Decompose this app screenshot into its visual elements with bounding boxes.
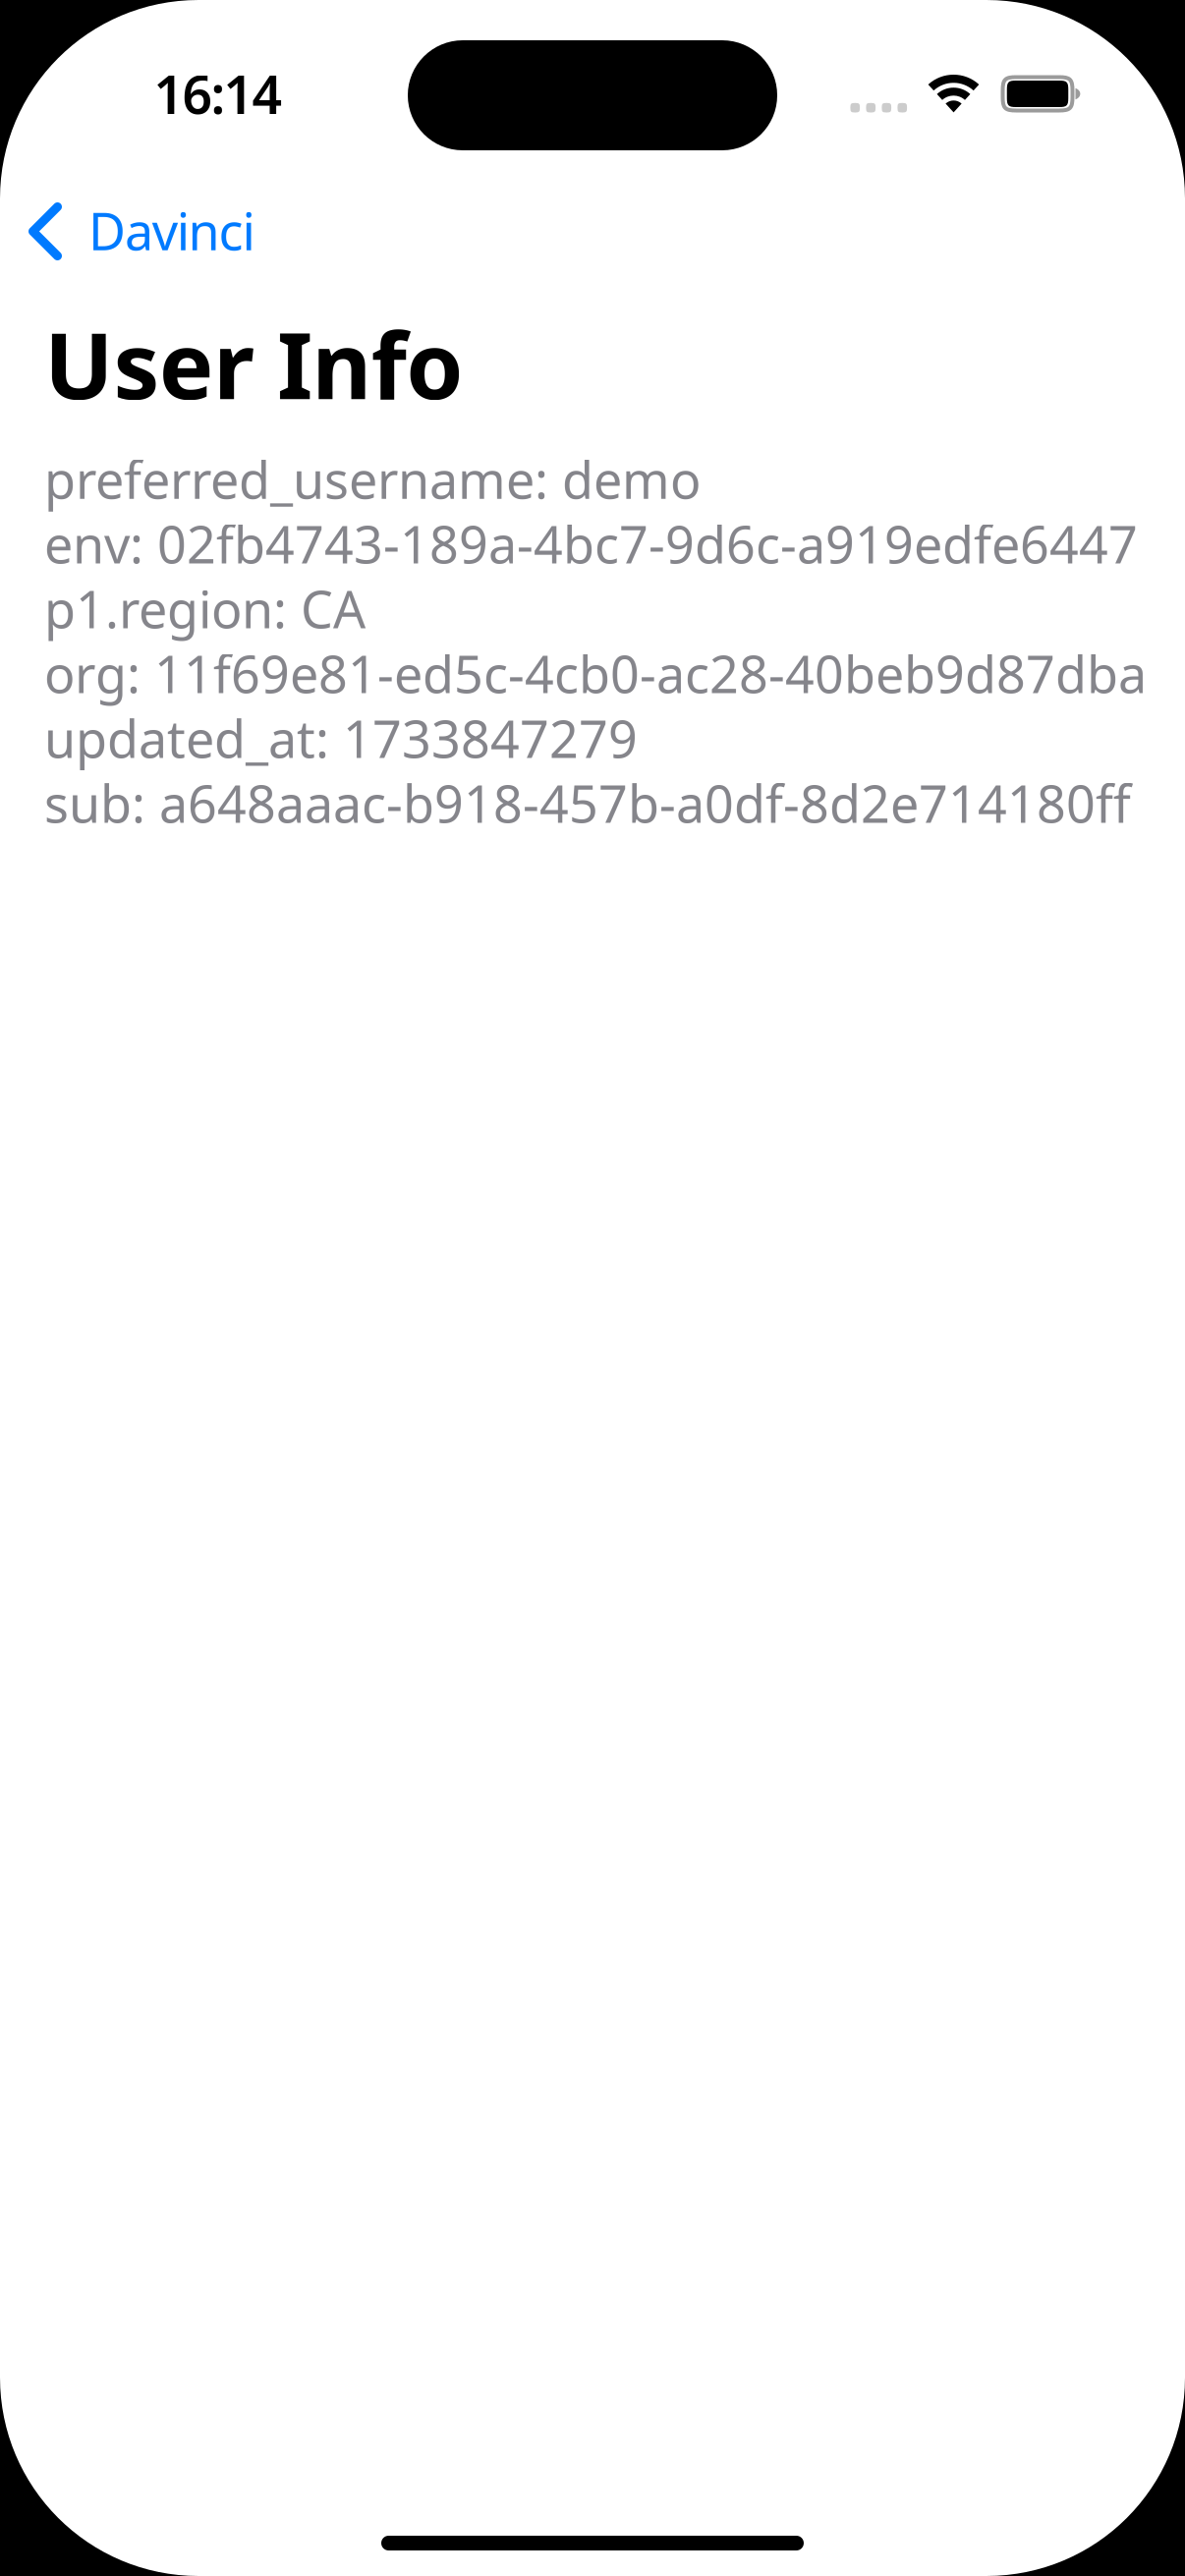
staticText: 16:14 bbox=[154, 59, 282, 129]
staticText: Davinci bbox=[88, 196, 255, 264]
staticText: User Info bbox=[44, 303, 463, 424]
staticText: updated_at: 1733847279 bbox=[44, 704, 638, 772]
staticText: sub: a648aaac-b918-457b-a0df-8d2e714180f… bbox=[44, 769, 1131, 837]
staticText: p1.region: CA bbox=[44, 575, 366, 642]
staticText: preferred_username: demo bbox=[44, 445, 701, 513]
staticText: org: 11f69e81-ed5c-4cb0-ac28-40beb9d87db… bbox=[44, 639, 1147, 707]
button[interactable]: Back to Davinci bbox=[0, 190, 1185, 277]
staticText: env: 02fb4743-189a-4bc7-9d6c-a919edfe644… bbox=[44, 510, 1138, 578]
